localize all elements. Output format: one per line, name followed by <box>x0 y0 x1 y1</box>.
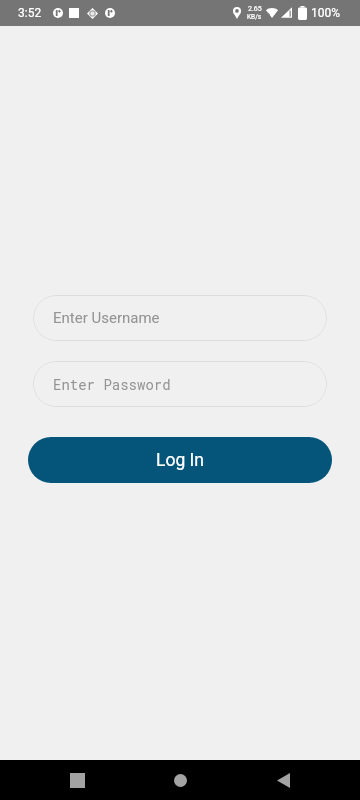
button[interactable]: Enter Password <box>33 361 327 407</box>
button[interactable]: Log In <box>28 437 332 483</box>
staticText: Enter Username <box>53 309 160 327</box>
button[interactable]: Home <box>154 760 206 800</box>
staticText: Enter Password <box>53 375 171 393</box>
button[interactable]: Enter Username <box>33 295 327 341</box>
button[interactable]: Recent apps <box>51 760 103 800</box>
staticText: KB/s <box>247 13 262 21</box>
button[interactable]: Back <box>257 760 309 800</box>
staticText: 100% <box>311 6 341 20</box>
staticText: Log In <box>156 450 204 471</box>
staticText: 3:52 <box>18 6 42 20</box>
staticText: 2.65 <box>248 5 262 13</box>
